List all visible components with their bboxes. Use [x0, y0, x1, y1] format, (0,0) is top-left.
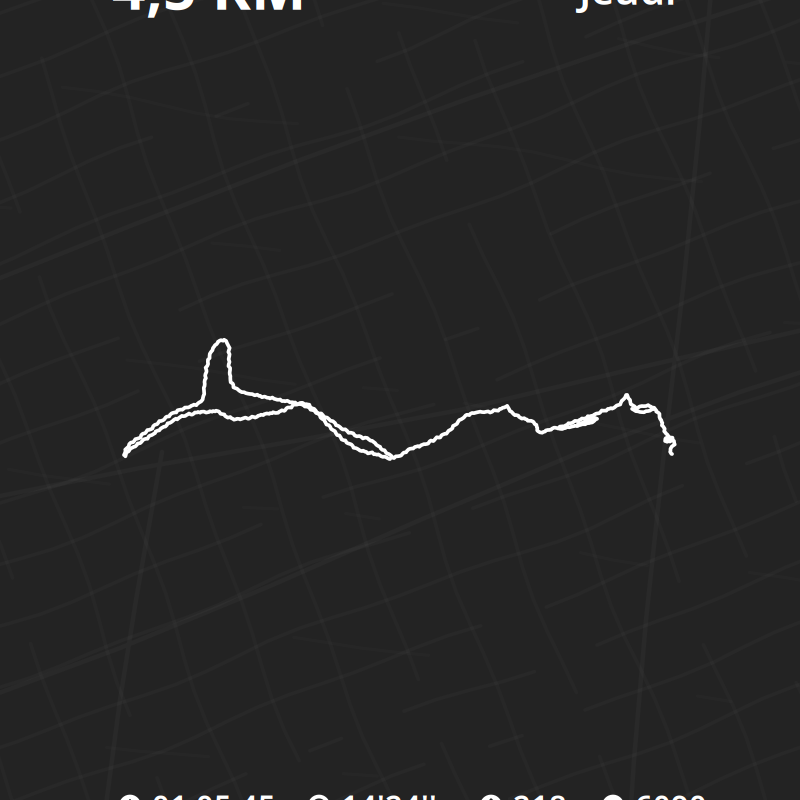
- staticText: 218: [513, 785, 567, 800]
- button[interactable]: Allure: [308, 785, 480, 800]
- staticText: 4,5 KM: [112, 0, 306, 26]
- staticText: 01:05:45: [152, 785, 276, 800]
- button[interactable]: Durée: [119, 785, 308, 800]
- staticText: Jeudi: [579, 0, 676, 16]
- button[interactable]: Calories: [480, 785, 602, 800]
- staticText: 6090: [635, 785, 707, 800]
- staticText: 14'24'': [341, 785, 437, 800]
- button[interactable]: Pas: [602, 785, 722, 800]
